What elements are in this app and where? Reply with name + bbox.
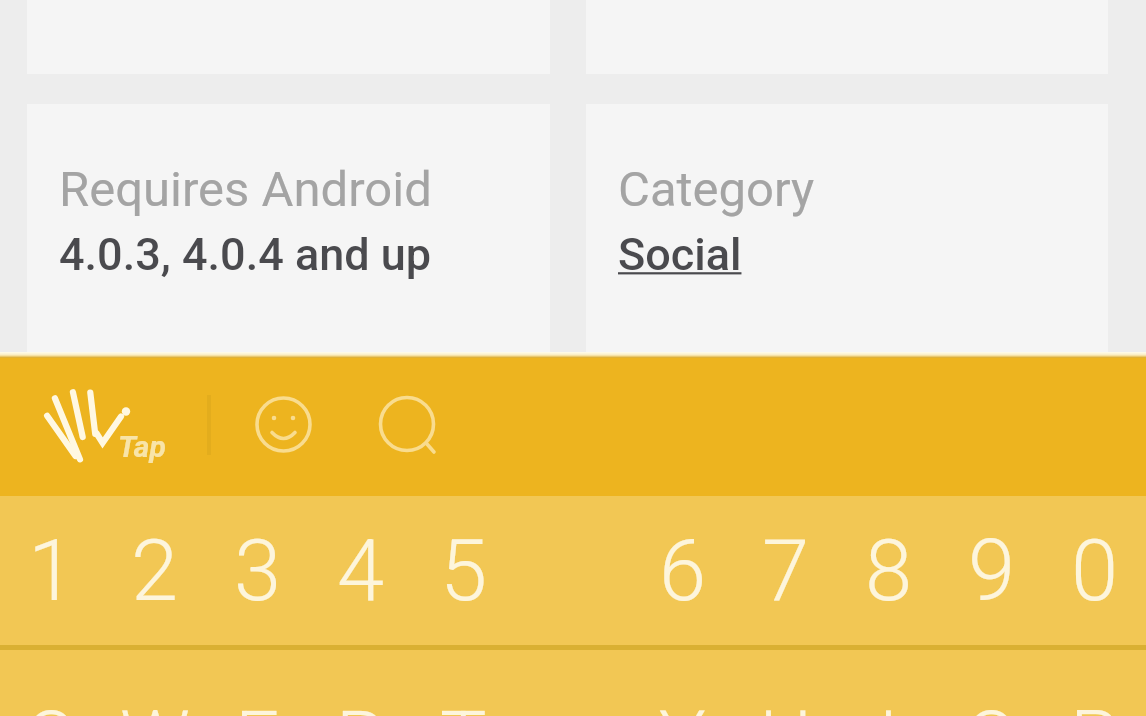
button[interactable]: 4 (309, 496, 412, 645)
staticText: O (965, 694, 1018, 716)
button[interactable]: 7 (734, 496, 837, 645)
staticText: W (120, 694, 190, 716)
staticText: 3 (234, 521, 282, 621)
staticText: R (336, 694, 386, 716)
button[interactable]: 6 (631, 496, 734, 645)
button[interactable]: Q (0, 650, 103, 716)
staticText: E (235, 694, 280, 716)
staticText: T (440, 694, 487, 716)
staticText: P (1070, 694, 1119, 716)
staticText: 4.0.3, 4.0.4 and up (59, 228, 432, 281)
staticText: Q (25, 694, 78, 716)
button[interactable]: E (206, 650, 309, 716)
staticText: Y (659, 694, 706, 716)
button[interactable]: 2 (103, 496, 206, 645)
staticText: I (878, 694, 899, 716)
staticText: 4 (337, 521, 385, 621)
button[interactable]: I (837, 650, 940, 716)
button[interactable]: U (734, 650, 837, 716)
button[interactable]: 3 (206, 496, 309, 645)
button[interactable]: 0 (1043, 496, 1146, 645)
button[interactable]: P (1043, 650, 1146, 716)
staticText: 6 (659, 521, 707, 621)
staticText: Tap (118, 429, 166, 464)
staticText: Category (618, 161, 815, 218)
button[interactable]: Search (377, 394, 439, 456)
button[interactable]: Tap keyboard (44, 388, 166, 464)
staticText: Requires Android (59, 161, 432, 218)
button[interactable]: O (940, 650, 1043, 716)
staticText: 2 (131, 521, 179, 621)
button[interactable]: 9 (940, 496, 1043, 645)
button[interactable]: W (103, 650, 206, 716)
button[interactable]: Social (618, 228, 742, 281)
button[interactable]: R (309, 650, 412, 716)
staticText: U (760, 694, 812, 716)
staticText: 8 (865, 521, 913, 621)
button[interactable]: 1 (0, 496, 103, 645)
button[interactable]: T (412, 650, 515, 716)
staticText: 0 (1071, 521, 1119, 621)
staticText: 5 (440, 521, 488, 621)
button[interactable]: Emoji (255, 396, 312, 453)
button[interactable]: 8 (837, 496, 940, 645)
staticText: 9 (968, 521, 1016, 621)
button[interactable]: Y (631, 650, 734, 716)
button[interactable]: 5 (412, 496, 515, 645)
staticText: 1 (28, 521, 76, 621)
staticText: 7 (762, 521, 810, 621)
